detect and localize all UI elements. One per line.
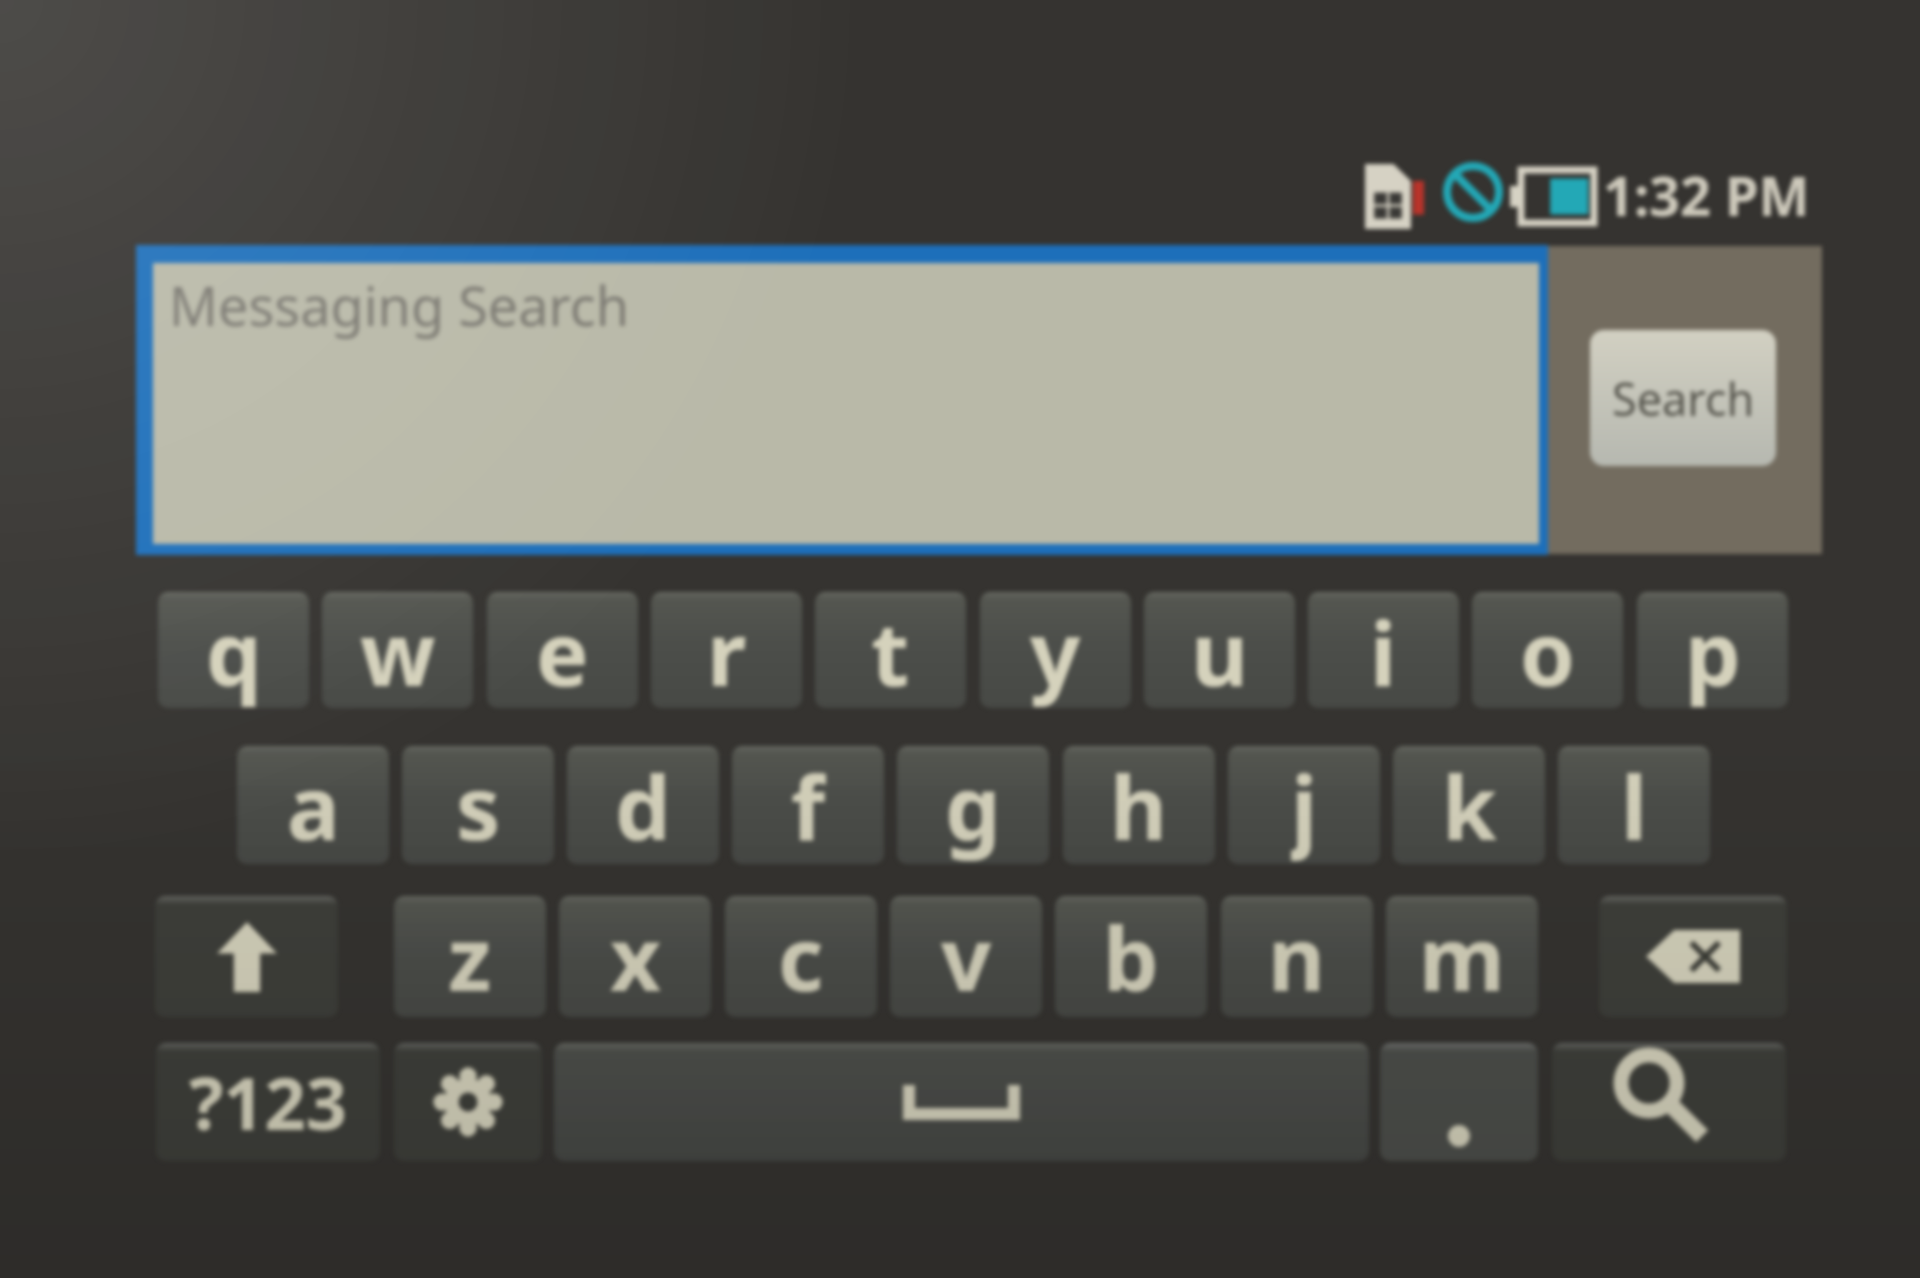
button[interactable]: Space (554, 1043, 1369, 1161)
staticText: m (1419, 897, 1505, 1017)
staticText: c (778, 897, 824, 1017)
staticText: w (360, 592, 436, 708)
staticText: e (536, 592, 589, 708)
button[interactable]: l (1558, 746, 1710, 864)
staticText: 1:32 PM (1603, 158, 1810, 232)
button[interactable]: y (980, 592, 1131, 708)
button[interactable]: s (402, 746, 554, 864)
staticText: j (1291, 746, 1318, 864)
staticText: k (1442, 746, 1497, 864)
button[interactable]: h (1063, 746, 1215, 864)
button[interactable]: ?123 (156, 1043, 380, 1161)
staticText: q (206, 592, 262, 708)
staticText: b (1103, 897, 1159, 1017)
staticText: a (287, 746, 340, 864)
staticText: s (456, 746, 501, 864)
button[interactable]: Search (1552, 1043, 1786, 1161)
staticText: p (1685, 592, 1741, 708)
button[interactable]: Input method (394, 1043, 542, 1161)
staticText: x (610, 897, 661, 1017)
staticText: z (448, 897, 492, 1017)
button[interactable]: Shift (155, 896, 338, 1017)
button[interactable]: u (1144, 592, 1295, 708)
button[interactable]: x (559, 896, 711, 1017)
button[interactable]: f (732, 746, 884, 864)
staticText: Messaging Search (169, 268, 630, 342)
button[interactable]: j (1228, 746, 1380, 864)
button[interactable]: a (237, 746, 389, 864)
button[interactable]: b (1055, 896, 1207, 1017)
staticText: o (1520, 592, 1576, 708)
button[interactable]: Messaging Search (153, 263, 1539, 544)
button[interactable]: g (897, 746, 1049, 864)
staticText: n (1268, 897, 1326, 1017)
staticText: u (1191, 592, 1249, 708)
staticText: l (1621, 746, 1648, 864)
staticText: v (941, 897, 992, 1017)
staticText: f (791, 746, 826, 864)
button[interactable]: Period (1380, 1043, 1538, 1161)
button[interactable]: k (1393, 746, 1545, 864)
button[interactable]: o (1472, 592, 1623, 708)
staticText: y (1030, 592, 1081, 708)
button[interactable]: e (487, 592, 638, 708)
button[interactable]: n (1221, 896, 1373, 1017)
button[interactable]: t (815, 592, 966, 708)
button[interactable]: p (1637, 592, 1788, 708)
button[interactable]: q (158, 592, 309, 708)
button[interactable]: z (394, 896, 546, 1017)
button[interactable]: Search (1590, 330, 1776, 466)
button[interactable]: d (567, 746, 719, 864)
staticText: d (615, 746, 671, 864)
staticText: g (945, 746, 1001, 864)
button[interactable]: c (725, 896, 877, 1017)
staticText: h (1110, 746, 1168, 864)
staticText: Search (1612, 368, 1755, 429)
staticText: r (707, 592, 747, 708)
staticText: i (1370, 592, 1397, 708)
button[interactable]: Delete (1599, 896, 1787, 1017)
button[interactable]: w (322, 592, 473, 708)
button[interactable]: r (651, 592, 802, 708)
staticText: t (871, 592, 910, 708)
button[interactable]: v (890, 896, 1042, 1017)
staticText: ?123 (189, 1053, 347, 1151)
button[interactable]: m (1386, 896, 1538, 1017)
button[interactable]: i (1308, 592, 1459, 708)
